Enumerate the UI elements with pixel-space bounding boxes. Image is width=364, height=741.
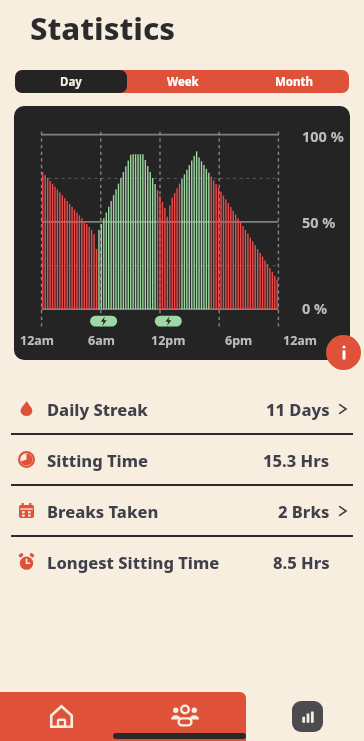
staticText: Statistics: [30, 7, 176, 49]
staticText: 12pm: [151, 332, 186, 349]
staticText: 11 Days: [266, 398, 330, 420]
staticText: Day: [60, 74, 82, 90]
button[interactable]: Longest Sitting Time: [0, 537, 364, 586]
staticText: 8.5 Hrs: [273, 551, 330, 573]
staticText: Breaks Taken: [47, 500, 159, 522]
button[interactable]: Community: [123, 692, 246, 741]
button[interactable]: Sitting Time: [0, 435, 364, 484]
staticText: Month: [275, 74, 313, 90]
button[interactable]: Home: [0, 692, 123, 741]
staticText: 50 %: [302, 212, 336, 232]
staticText: 2 Brks: [278, 500, 330, 522]
staticText: Sitting Time: [47, 449, 148, 471]
staticText: 12am: [20, 332, 54, 349]
staticText: 15.3 Hrs: [263, 449, 330, 471]
staticText: 12am: [283, 332, 317, 349]
button[interactable]: Month: [238, 70, 349, 93]
staticText: Daily Streak: [47, 398, 148, 420]
button[interactable]: Information: [326, 335, 361, 370]
staticText: Week: [167, 74, 199, 90]
staticText: 100 %: [302, 126, 344, 146]
button[interactable]: Breaks Taken: [0, 486, 364, 535]
staticText: 6am: [88, 332, 115, 349]
staticText: 0 %: [302, 298, 328, 318]
button[interactable]: Statistics: [292, 701, 323, 732]
staticText: 6pm: [225, 332, 253, 349]
button[interactable]: Day: [15, 70, 127, 93]
staticText: Longest Sitting Time: [47, 551, 220, 573]
button[interactable]: Daily Streak: [0, 384, 364, 433]
button[interactable]: Week: [127, 70, 238, 93]
